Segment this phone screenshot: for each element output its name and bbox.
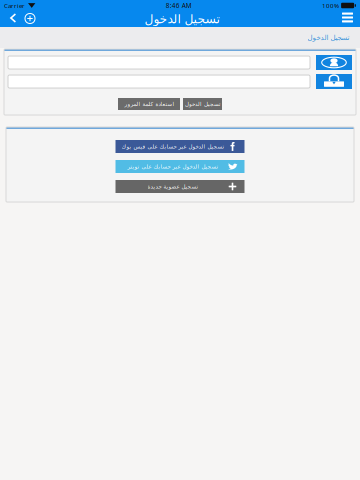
- staticText: تسجيل الدخول: [307, 33, 349, 42]
- staticText: تسجيل الدخول: [144, 12, 219, 26]
- button[interactable]: Back: [6, 11, 20, 27]
- button[interactable]: استعادة كلمة المرور: [118, 98, 180, 110]
- button[interactable]: تسجيل الدخول: [183, 98, 222, 110]
- button[interactable]: Username: [316, 55, 352, 70]
- staticText: Carrier: [4, 1, 25, 10]
- staticText: 8:46 AM: [166, 1, 192, 10]
- button[interactable]: تسجيل عضوية جديدة: [115, 180, 244, 193]
- staticText: تسجيل الدخول عبر حسابك على تويتر: [127, 163, 218, 170]
- staticText: 100%: [322, 1, 339, 10]
- staticText: تسجيل عضوية جديدة: [147, 183, 198, 190]
- staticText: تسجيل الدخول: [184, 101, 220, 107]
- staticText: استعادة كلمة المرور: [124, 101, 174, 107]
- staticText: تسجيل الدخول عبر حسابك على فيس بوك: [121, 143, 224, 150]
- button[interactable]: تسجيل الدخول: [307, 31, 349, 44]
- button[interactable]: تسجيل الدخول عبر حسابك على فيس بوك: [115, 140, 244, 153]
- button[interactable]: تسجيل الدخول عبر حسابك على تويتر: [115, 160, 244, 173]
- button[interactable]: Password: [316, 74, 352, 89]
- button[interactable]: Add: [20, 11, 40, 27]
- button[interactable]: Menu: [341, 11, 354, 27]
